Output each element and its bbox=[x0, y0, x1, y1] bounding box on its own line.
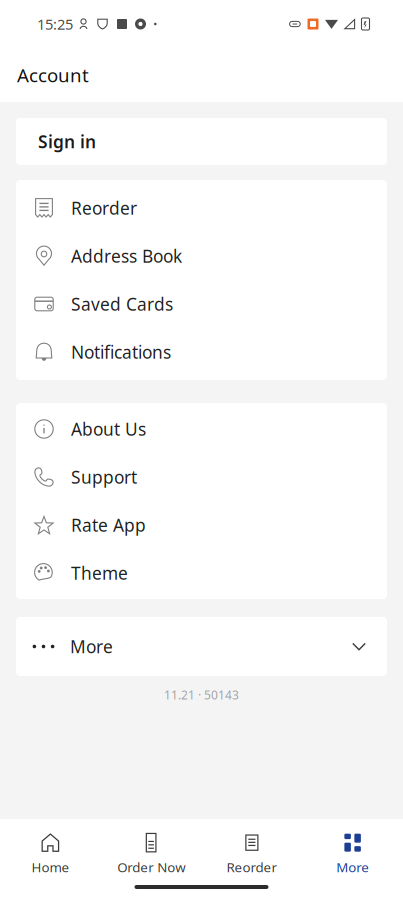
button[interactable]: Address Book bbox=[16, 232, 387, 280]
button[interactable]: Reorder bbox=[16, 184, 387, 232]
staticText: 15:25 bbox=[37, 14, 73, 34]
staticText: Reorder bbox=[71, 196, 137, 219]
button[interactable]: About Us bbox=[16, 405, 387, 453]
staticText: Saved Cards bbox=[71, 292, 173, 315]
staticText: Home bbox=[31, 858, 69, 876]
button[interactable]: Sign in bbox=[16, 118, 387, 165]
button[interactable]: More bbox=[16, 617, 387, 676]
button[interactable]: Order Now bbox=[101, 819, 202, 874]
staticText: Order Now bbox=[117, 858, 185, 876]
button[interactable]: Notifications bbox=[16, 328, 387, 376]
staticText: Support bbox=[71, 465, 137, 488]
staticText: More bbox=[336, 858, 369, 876]
staticText: Reorder bbox=[226, 858, 277, 876]
button[interactable]: Support bbox=[16, 453, 387, 501]
button[interactable]: Home bbox=[0, 819, 101, 874]
staticText: More bbox=[70, 635, 113, 658]
button[interactable]: Rate App bbox=[16, 501, 387, 549]
staticText: Account bbox=[17, 63, 89, 87]
button[interactable]: Saved Cards bbox=[16, 280, 387, 328]
button[interactable]: Theme bbox=[16, 549, 387, 597]
staticText: Rate App bbox=[71, 513, 146, 536]
staticText: Address Book bbox=[71, 244, 182, 267]
staticText: Sign in bbox=[38, 130, 96, 153]
staticText: About Us bbox=[71, 417, 146, 440]
button[interactable]: Reorder bbox=[201, 819, 302, 874]
button[interactable]: More bbox=[302, 819, 403, 874]
staticText: 11.21 · 50143 bbox=[164, 687, 239, 703]
staticText: Notifications bbox=[71, 340, 171, 363]
staticText: Theme bbox=[71, 561, 128, 584]
